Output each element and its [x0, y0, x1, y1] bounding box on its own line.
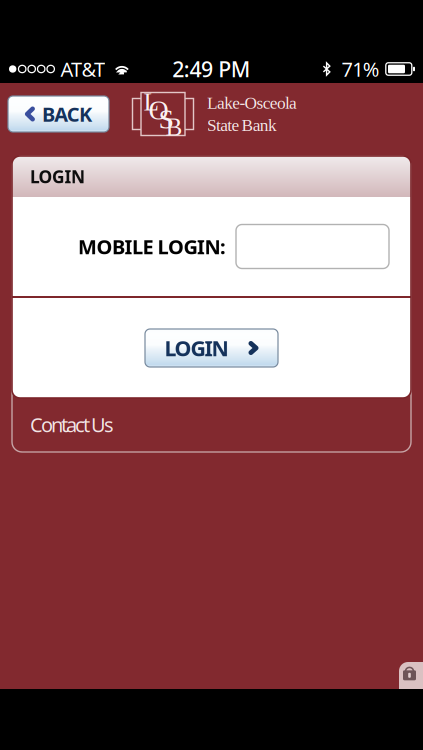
staticText: 71% — [342, 56, 380, 82]
staticText: LOGIN — [30, 165, 85, 188]
staticText: AT&T — [60, 56, 105, 82]
staticText: State Bank — [207, 115, 277, 135]
staticText: B — [165, 113, 182, 141]
staticText: LOGIN — [164, 334, 228, 362]
staticText: Contact Us — [30, 411, 114, 438]
staticText: O — [148, 94, 168, 125]
staticText: 2:49 PM — [172, 55, 251, 83]
staticText: L — [143, 88, 158, 116]
button[interactable]: LOGIN — [145, 329, 278, 367]
staticText: Lake-Osceola — [207, 93, 297, 112]
staticText: S — [158, 103, 174, 134]
staticText: MOBILE LOGIN: — [78, 233, 226, 260]
staticText: BACK — [42, 101, 92, 127]
button[interactable]: Contact Us — [12, 398, 411, 451]
button[interactable]: BACK — [8, 96, 109, 132]
